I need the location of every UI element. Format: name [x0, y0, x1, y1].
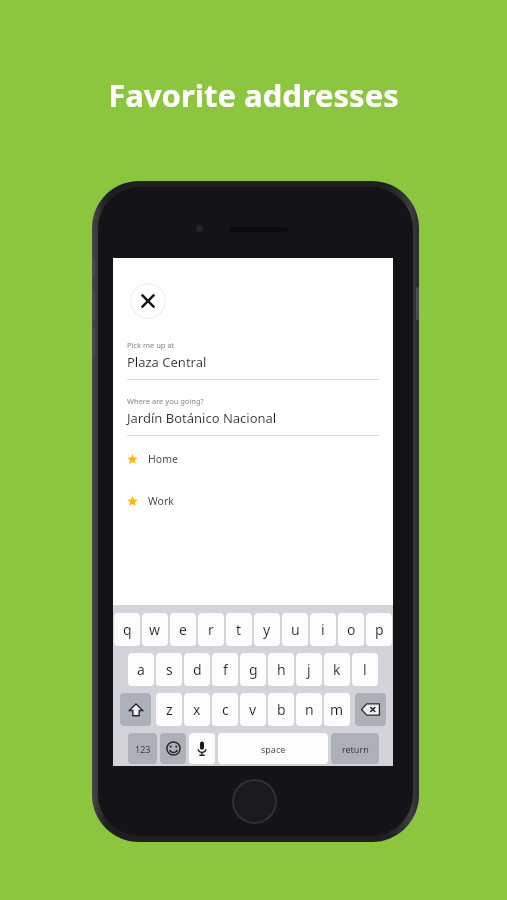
staticText: n: [305, 700, 314, 719]
button[interactable]: y: [254, 613, 280, 646]
staticText: Plaza Central: [127, 353, 207, 371]
staticText: c: [222, 700, 229, 719]
staticText: v: [249, 700, 257, 719]
button[interactable]: Dictation: [189, 733, 215, 764]
staticText: j: [307, 660, 311, 679]
button[interactable]: Pick me up at: [113, 340, 393, 380]
button[interactable]: l: [352, 653, 378, 686]
staticText: u: [291, 620, 300, 639]
staticText: y: [263, 620, 271, 639]
staticText: a: [137, 660, 145, 679]
button[interactable]: i: [310, 613, 336, 646]
staticText: w: [149, 620, 161, 639]
staticText: Work: [148, 494, 174, 508]
button[interactable]: m: [324, 693, 350, 726]
staticText: return: [342, 743, 369, 755]
button[interactable]: k: [324, 653, 350, 686]
button[interactable]: Work: [113, 494, 393, 508]
button[interactable]: v: [240, 693, 266, 726]
button[interactable]: t: [226, 613, 252, 646]
button[interactable]: z: [156, 693, 182, 726]
button[interactable]: Where are you going?: [113, 396, 393, 436]
staticText: Pick me up at: [127, 340, 175, 350]
button[interactable]: b: [268, 693, 294, 726]
button[interactable]: j: [296, 653, 322, 686]
button[interactable]: s: [156, 653, 182, 686]
button[interactable]: o: [338, 613, 364, 646]
staticText: b: [277, 700, 286, 719]
button[interactable]: 123: [128, 733, 157, 764]
button[interactable]: Home: [113, 452, 393, 466]
button[interactable]: Emoji: [160, 733, 186, 764]
staticText: m: [330, 700, 344, 719]
staticText: k: [333, 660, 341, 679]
button[interactable]: e: [170, 613, 196, 646]
button[interactable]: w: [142, 613, 168, 646]
staticText: Jardín Botánico Nacional: [127, 409, 277, 427]
button[interactable]: r: [198, 613, 224, 646]
staticText: p: [375, 620, 384, 639]
staticText: x: [193, 700, 201, 719]
button[interactable]: Shift: [120, 693, 151, 726]
button[interactable]: space: [218, 733, 328, 764]
button[interactable]: n: [296, 693, 322, 726]
staticText: f: [223, 660, 228, 679]
staticText: q: [123, 620, 132, 639]
staticText: h: [277, 660, 286, 679]
staticText: d: [193, 660, 202, 679]
staticText: g: [249, 660, 258, 679]
staticText: o: [347, 620, 356, 639]
button[interactable]: a: [128, 653, 154, 686]
button[interactable]: g: [240, 653, 266, 686]
staticText: r: [208, 620, 214, 639]
button[interactable]: return: [331, 733, 379, 764]
staticText: z: [166, 700, 173, 719]
staticText: i: [321, 620, 325, 639]
button[interactable]: p: [366, 613, 392, 646]
staticText: space: [261, 743, 286, 755]
button[interactable]: q: [114, 613, 140, 646]
button[interactable]: d: [184, 653, 210, 686]
staticText: t: [236, 620, 242, 639]
button[interactable]: Close: [130, 283, 166, 319]
staticText: Where are you going?: [127, 396, 204, 406]
staticText: e: [179, 620, 187, 639]
staticText: l: [363, 660, 367, 679]
staticText: Favorite addresses: [0, 74, 507, 116]
button[interactable]: x: [184, 693, 210, 726]
staticText: s: [166, 660, 173, 679]
button[interactable]: c: [212, 693, 238, 726]
button[interactable]: Backspace: [355, 693, 386, 726]
staticText: Home: [148, 452, 178, 466]
button[interactable]: h: [268, 653, 294, 686]
button[interactable]: f: [212, 653, 238, 686]
button[interactable]: u: [282, 613, 308, 646]
staticText: 123: [135, 743, 151, 755]
